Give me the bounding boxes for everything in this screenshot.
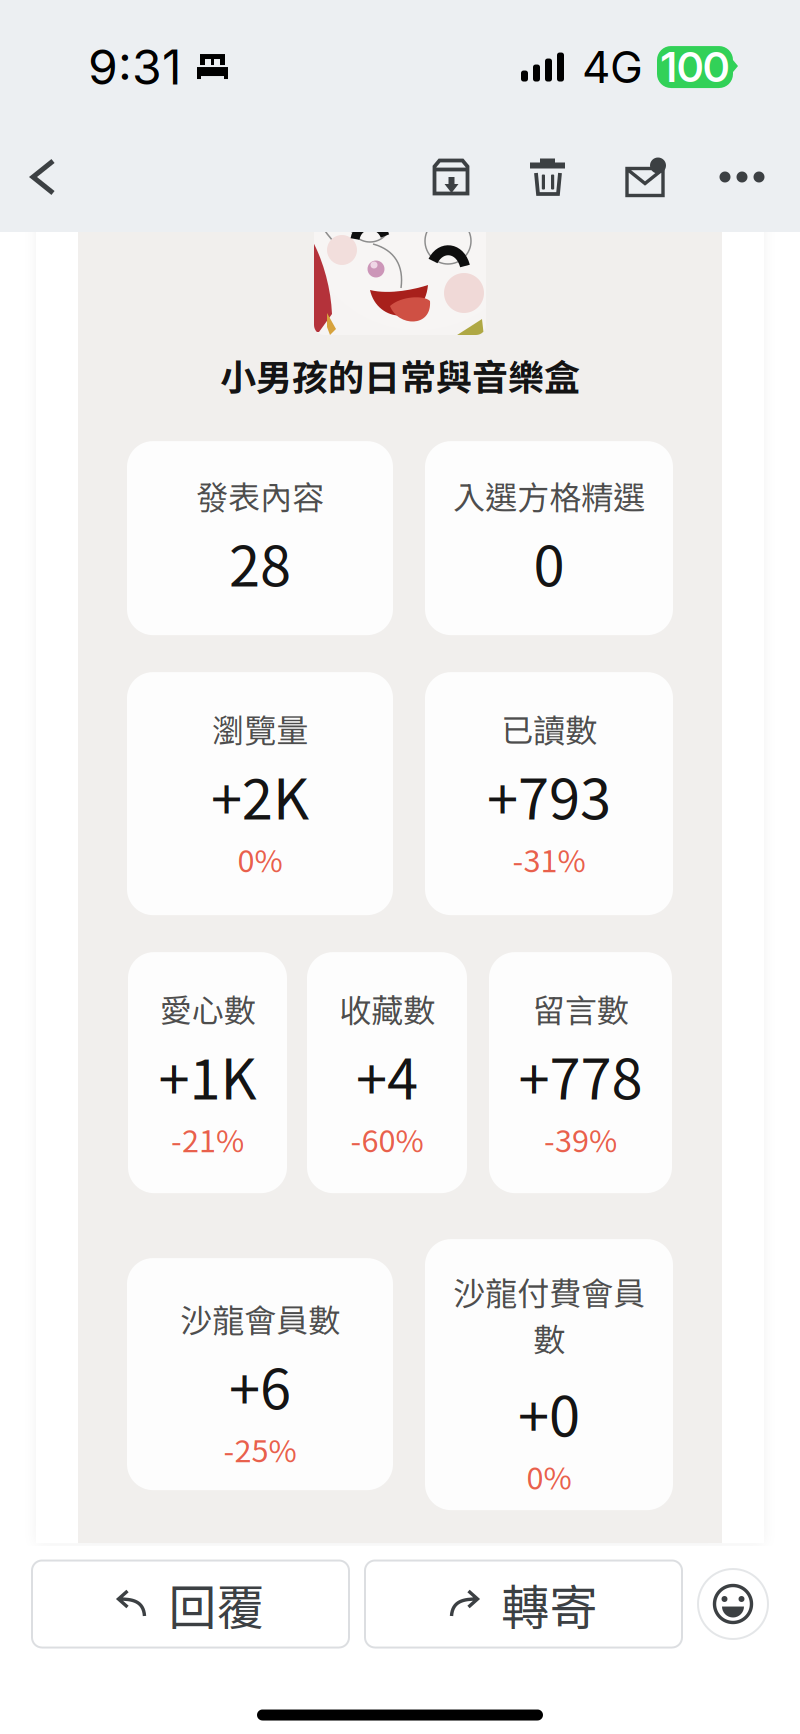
staticText: +4 [356, 1034, 418, 1116]
staticText: 收藏數 [339, 985, 435, 1031]
staticText: +6 [229, 1344, 291, 1426]
button[interactable]: Back [0, 134, 86, 220]
staticText: 0% [237, 837, 282, 881]
staticText: 回覆 [168, 1569, 264, 1639]
staticText: +778 [518, 1034, 642, 1116]
button[interactable]: 回覆 [32, 1560, 349, 1647]
staticText: -39% [544, 1117, 617, 1161]
staticText: 沙龍會員數 [180, 1295, 340, 1341]
staticText: 已讀數 [501, 705, 597, 751]
button[interactable]: Add emoji reaction [698, 1569, 768, 1639]
staticText: 發表內容 [196, 472, 324, 518]
staticText: -25% [223, 1427, 296, 1471]
staticText: 0 [533, 521, 564, 603]
staticText: 28 [229, 521, 291, 603]
staticText: 瀏覽量 [212, 705, 308, 751]
staticText: 4G [582, 40, 643, 94]
staticText: +0 [518, 1372, 580, 1453]
button[interactable]: Delete [504, 134, 592, 220]
staticText: -60% [350, 1117, 423, 1161]
staticText: 沙龍付費會員 數 [453, 1268, 645, 1361]
button[interactable]: Mark as unread [601, 134, 689, 220]
staticText: 9:31 [88, 38, 182, 96]
staticText: +1K [158, 1034, 256, 1116]
button[interactable]: Archive [407, 134, 495, 220]
staticText: 留言數 [532, 985, 628, 1031]
button[interactable]: 轉寄 [365, 1560, 682, 1647]
staticText: 愛心數 [159, 985, 255, 1031]
staticText: +793 [487, 754, 611, 836]
button[interactable]: More options [698, 134, 786, 220]
staticText: +2K [211, 754, 309, 836]
staticText: 轉寄 [501, 1569, 597, 1639]
staticText: 0% [526, 1454, 571, 1498]
staticText: 入選方格精選 [453, 472, 645, 518]
staticText: -31% [512, 837, 585, 881]
staticText: 100 [661, 42, 729, 92]
staticText: 小男孩的日常與音樂盒 [220, 349, 580, 401]
staticText: -21% [171, 1117, 244, 1161]
